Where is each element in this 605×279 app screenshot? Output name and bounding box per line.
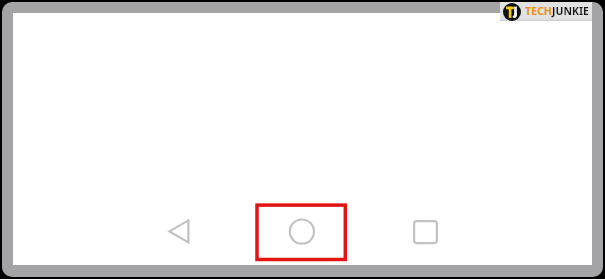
button[interactable]: Home <box>280 210 324 254</box>
staticText: TECH <box>525 4 552 18</box>
staticText: JUNKIE <box>552 4 589 18</box>
button[interactable]: Back <box>156 210 200 254</box>
button[interactable]: Recent apps <box>403 210 447 254</box>
